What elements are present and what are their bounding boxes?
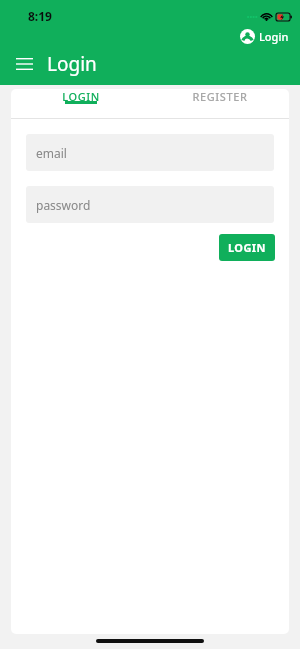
button[interactable]: LOGIN: [219, 234, 275, 261]
button[interactable]: REGISTER: [150, 89, 289, 104]
staticText: email: [36, 145, 67, 161]
staticText: LOGIN: [228, 240, 266, 255]
button[interactable]: Login: [237, 27, 292, 46]
staticText: 8:19: [28, 8, 52, 24]
button[interactable]: LOGIN: [11, 89, 150, 104]
staticText: LOGIN: [62, 89, 100, 104]
staticText: password: [36, 197, 91, 213]
staticText: Login: [259, 29, 289, 44]
staticText: Login: [47, 51, 97, 77]
button[interactable]: email: [26, 134, 274, 171]
staticText: REGISTER: [192, 89, 248, 104]
button[interactable]: Open navigation menu: [8, 48, 40, 80]
button[interactable]: password: [26, 186, 274, 223]
